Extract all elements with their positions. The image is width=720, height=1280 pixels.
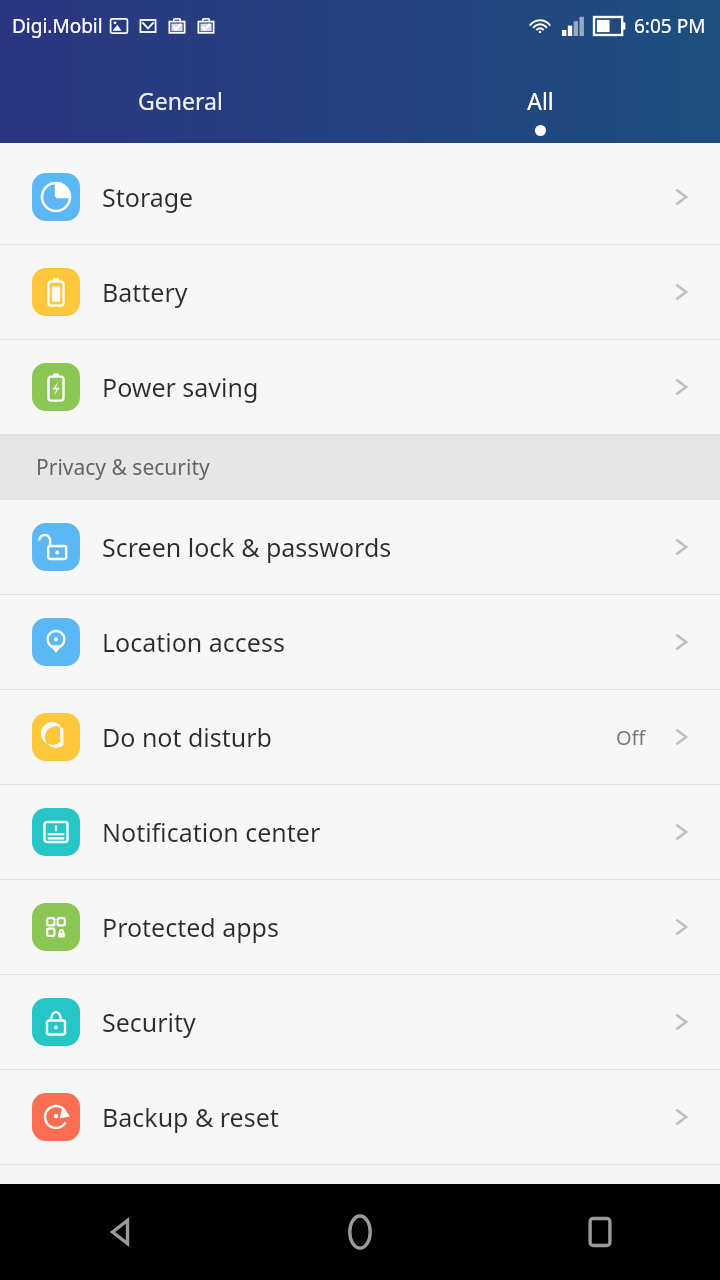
- button[interactable]: Home: [240, 1184, 480, 1280]
- button[interactable]: Security: [0, 975, 720, 1070]
- button[interactable]: Do not disturb: [0, 690, 720, 785]
- staticText: General: [138, 85, 223, 116]
- button[interactable]: Storage: [0, 150, 720, 245]
- staticText: Notification center: [102, 815, 321, 849]
- staticText: Digi.Mobil: [12, 13, 103, 39]
- staticText: Backup & reset: [102, 1100, 279, 1134]
- button[interactable]: Back: [0, 1184, 240, 1280]
- button[interactable]: Power saving: [0, 340, 720, 435]
- staticText: Power saving: [102, 370, 259, 404]
- staticText: Do not disturb: [102, 720, 272, 754]
- button[interactable]: Recents: [480, 1184, 720, 1280]
- staticText: Off: [616, 724, 646, 751]
- button[interactable]: Battery: [0, 245, 720, 340]
- button[interactable]: General: [0, 52, 360, 143]
- button[interactable]: All: [360, 52, 720, 143]
- staticText: Battery: [102, 275, 188, 309]
- button[interactable]: Location access: [0, 595, 720, 690]
- staticText: Screen lock & passwords: [102, 530, 392, 564]
- staticText: Storage: [102, 180, 194, 214]
- staticText: Protected apps: [102, 910, 279, 944]
- button[interactable]: Screen lock & passwords: [0, 500, 720, 595]
- button[interactable]: Backup & reset: [0, 1070, 720, 1165]
- staticText: Location access: [102, 625, 285, 659]
- staticText: Privacy & security: [36, 453, 210, 482]
- staticText: 6:05 PM: [634, 13, 706, 39]
- staticText: All: [527, 85, 554, 116]
- staticText: Security: [102, 1005, 196, 1039]
- button[interactable]: Protected apps: [0, 880, 720, 975]
- button[interactable]: Notification center: [0, 785, 720, 880]
